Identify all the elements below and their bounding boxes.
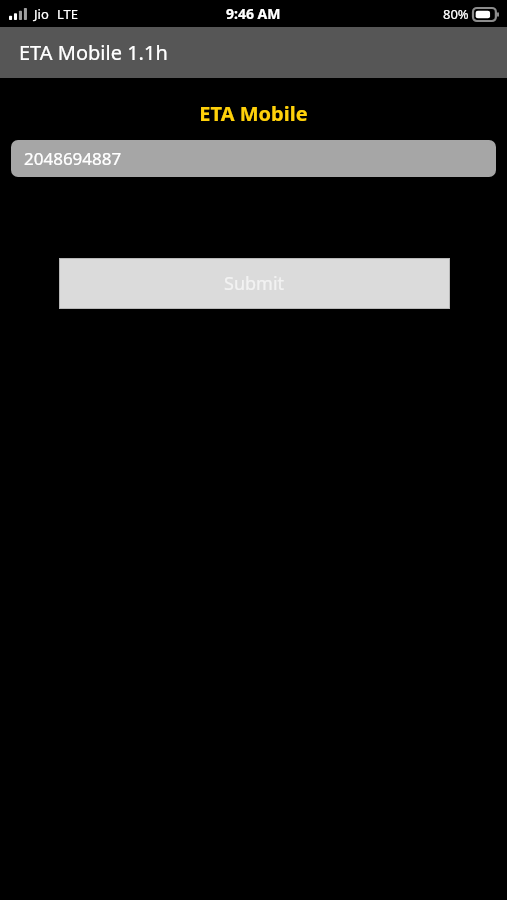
button[interactable]: 2048694887 — [11, 140, 496, 177]
staticText: ETA Mobile — [199, 100, 308, 127]
staticText: 2048694887 — [24, 147, 122, 170]
button[interactable]: Submit — [59, 258, 450, 309]
staticText: 80% — [443, 5, 469, 23]
staticText: Submit — [224, 271, 285, 296]
staticText: LTE — [57, 5, 79, 23]
staticText: Jio — [34, 5, 49, 23]
staticText: ETA Mobile 1.1h — [19, 39, 168, 66]
staticText: 9:46 AM — [226, 4, 281, 23]
